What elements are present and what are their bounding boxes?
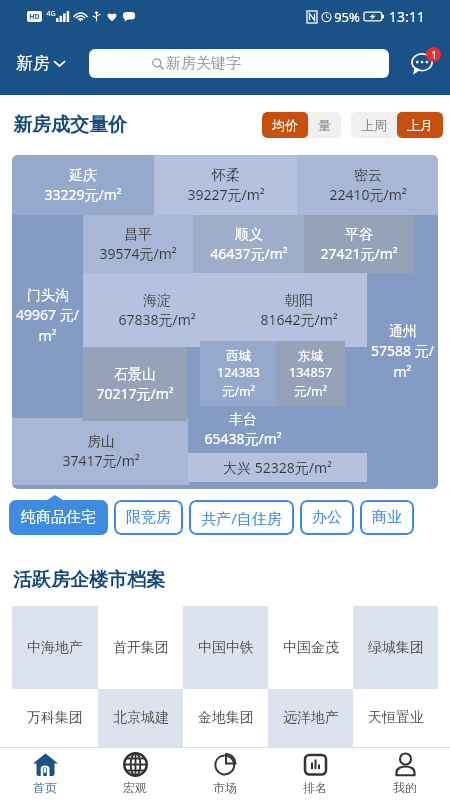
- staticText: 我的: [393, 780, 417, 795]
- staticText: 首页: [33, 780, 57, 795]
- staticText: 中国金茂: [283, 639, 339, 657]
- staticText: 西城: [226, 348, 251, 364]
- button[interactable]: 商业: [360, 500, 414, 535]
- staticText: 33229元/m²: [44, 185, 122, 204]
- button[interactable]: 昌平: [83, 215, 193, 273]
- staticText: 46437元/m²: [210, 244, 288, 263]
- button[interactable]: 北京城建: [98, 689, 183, 747]
- button[interactable]: 共产/自住房: [189, 500, 294, 535]
- staticText: 上周: [361, 117, 387, 133]
- staticText: 东城: [298, 348, 323, 364]
- staticText: 37417元/m²: [62, 451, 140, 470]
- button[interactable]: 办公: [300, 500, 354, 535]
- staticText: 4G: [46, 9, 56, 19]
- button[interactable]: 西城: [200, 341, 276, 406]
- staticText: 共产/自住房: [201, 508, 282, 528]
- staticText: 49967 元/ m²: [16, 305, 79, 346]
- button[interactable]: 远洋地产: [268, 689, 353, 747]
- staticText: 海淀: [143, 292, 171, 310]
- button[interactable]: 通州: [367, 215, 438, 489]
- button[interactable]: 朝阳: [230, 273, 367, 347]
- button[interactable]: 中海地产: [12, 606, 98, 689]
- button[interactable]: 中国金茂: [268, 606, 353, 689]
- button[interactable]: 丰台: [188, 406, 297, 453]
- button[interactable]: 大兴 52328元/m²: [188, 453, 367, 482]
- staticText: 70217元/m²: [96, 384, 174, 403]
- staticText: 万科集团: [27, 709, 83, 727]
- staticText: 怀柔: [212, 167, 240, 185]
- staticText: 朝阳: [285, 292, 313, 310]
- staticText: 门头沟: [27, 287, 69, 305]
- button[interactable]: 金地集团: [183, 689, 268, 747]
- staticText: 中国中铁: [198, 639, 254, 657]
- staticText: 首开集团: [113, 639, 169, 657]
- button[interactable]: 首开集团: [98, 606, 183, 689]
- button[interactable]: 平谷: [304, 215, 414, 273]
- staticText: 量: [318, 117, 331, 133]
- staticText: 远洋地产: [283, 709, 339, 727]
- button[interactable]: 首页: [0, 747, 90, 800]
- staticText: 81642元/m²: [260, 310, 338, 329]
- staticText: 上月: [407, 117, 433, 133]
- staticText: 限竞房: [126, 508, 171, 527]
- button[interactable]: 石景山: [83, 347, 187, 421]
- staticText: 北京城建: [113, 709, 169, 727]
- staticText: 39227元/m²: [187, 185, 265, 204]
- staticText: 活跃房企楼市档案: [13, 568, 165, 592]
- staticText: 67838元/m²: [118, 310, 196, 329]
- button[interactable]: 东城: [276, 341, 345, 406]
- staticText: 新房: [16, 53, 50, 74]
- button[interactable]: 新房: [16, 47, 65, 80]
- button[interactable]: 限竞房: [114, 500, 183, 535]
- button[interactable]: 海淀: [83, 273, 230, 347]
- button[interactable]: Messages: [407, 48, 439, 80]
- staticText: 办公: [312, 508, 342, 527]
- staticText: 通州: [389, 323, 417, 341]
- button[interactable]: 房山: [12, 418, 189, 485]
- staticText: 57588 元/ m²: [371, 341, 434, 382]
- button[interactable]: 顺义: [193, 215, 304, 273]
- button[interactable]: 纯商品住宅: [9, 500, 108, 535]
- button[interactable]: 新房关键字: [89, 49, 389, 78]
- staticText: 石景山: [114, 366, 156, 384]
- staticText: 排名: [303, 780, 327, 795]
- button[interactable]: 上周: [351, 112, 397, 138]
- staticText: 纯商品住宅: [21, 508, 96, 527]
- staticText: 95%: [334, 8, 360, 26]
- staticText: 房山: [87, 433, 115, 451]
- staticText: 大兴 52328元/m²: [223, 458, 332, 477]
- staticText: 顺义: [235, 226, 263, 244]
- button[interactable]: 中国中铁: [183, 606, 268, 689]
- button[interactable]: 门头沟: [12, 215, 83, 418]
- button[interactable]: 绿城集团: [353, 606, 438, 689]
- button[interactable]: 量: [308, 112, 341, 138]
- button[interactable]: 排名: [270, 747, 360, 800]
- button[interactable]: 万科集团: [12, 689, 98, 747]
- staticText: 13:11: [389, 7, 425, 26]
- staticText: 65438元/m²: [204, 429, 282, 448]
- staticText: 密云: [354, 167, 382, 185]
- staticText: HD: [29, 12, 40, 22]
- button[interactable]: 上月: [397, 112, 443, 138]
- staticText: 天恒置业: [368, 709, 424, 727]
- staticText: 1: [431, 48, 437, 62]
- staticText: 昌平: [124, 226, 152, 244]
- button[interactable]: 我的: [360, 747, 450, 800]
- staticText: 134857 元/m²: [289, 364, 332, 399]
- staticText: 延庆: [69, 167, 97, 185]
- staticText: 39574元/m²: [99, 244, 177, 263]
- staticText: 22410元/m²: [329, 185, 407, 204]
- staticText: 中海地产: [27, 639, 83, 657]
- button[interactable]: 密云: [297, 155, 438, 215]
- button[interactable]: 天恒置业: [353, 689, 438, 747]
- button[interactable]: 宏观: [90, 747, 180, 800]
- staticText: 124383 元/m²: [217, 364, 260, 399]
- staticText: 宏观: [123, 780, 147, 795]
- button[interactable]: 市场: [180, 747, 270, 800]
- staticText: 金地集团: [198, 709, 254, 727]
- button[interactable]: 怀柔: [154, 155, 297, 215]
- staticText: 27421元/m²: [320, 244, 398, 263]
- button[interactable]: 均价: [262, 112, 308, 138]
- button[interactable]: 延庆: [12, 155, 154, 215]
- staticText: 商业: [372, 508, 402, 527]
